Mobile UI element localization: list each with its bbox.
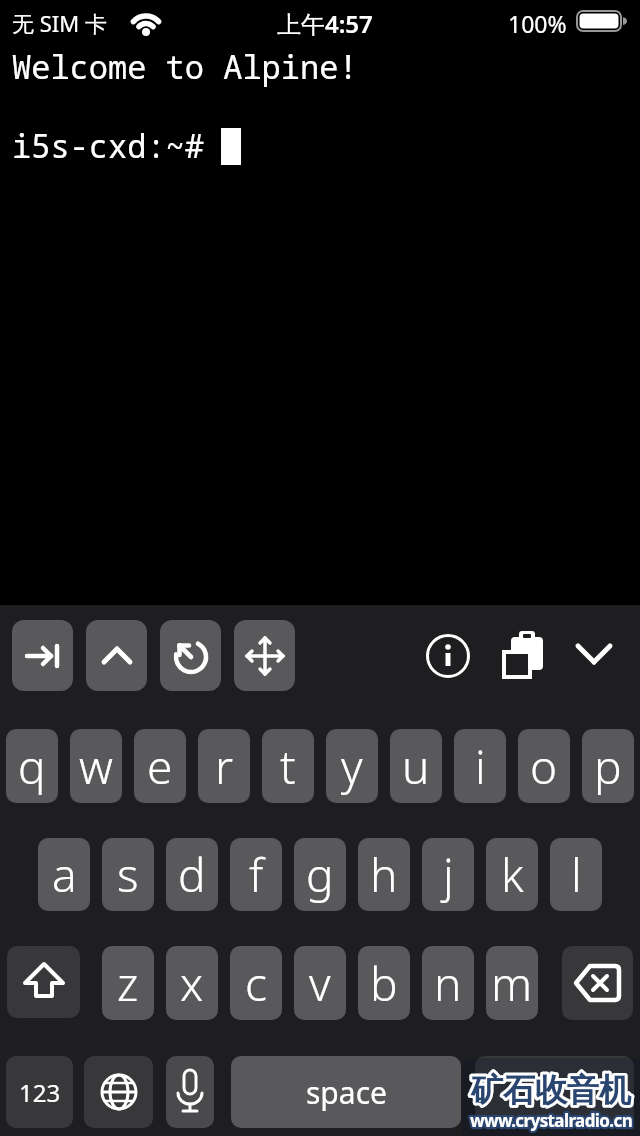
staticText: z: [117, 952, 139, 1015]
button[interactable]: r: [198, 729, 250, 803]
staticText: r: [215, 735, 234, 798]
button[interactable]: t: [262, 729, 314, 803]
button[interactable]: [498, 628, 548, 682]
staticText: 123: [19, 1076, 61, 1109]
staticText: s: [117, 843, 139, 906]
staticText: www.crystalradio.cn: [470, 1109, 633, 1132]
staticText: j: [443, 843, 454, 906]
button[interactable]: [12, 620, 73, 691]
button[interactable]: p: [582, 729, 634, 803]
button[interactable]: s: [102, 838, 154, 911]
staticText: u: [402, 735, 430, 798]
staticText: 矿石收音机: [471, 1070, 631, 1110]
button[interactable]: y: [326, 729, 378, 803]
staticText: t: [280, 735, 296, 798]
staticText: q: [18, 735, 46, 798]
staticText: n: [434, 952, 462, 1015]
button[interactable]: [166, 1056, 214, 1128]
staticText: x: [180, 952, 204, 1015]
staticText: w: [79, 735, 113, 798]
button[interactable]: [86, 620, 147, 691]
button[interactable]: j: [422, 838, 474, 911]
button[interactable]: u: [390, 729, 442, 803]
button[interactable]: k: [486, 838, 538, 911]
staticText: 矿石收音机: [471, 1070, 631, 1110]
staticText: f: [249, 843, 264, 906]
button[interactable]: [84, 1056, 153, 1128]
staticText: c: [245, 952, 267, 1015]
staticText: b: [370, 952, 398, 1015]
button[interactable]: h: [358, 838, 410, 911]
staticText: Welcome to Alpine!: [12, 45, 358, 89]
staticText: i5s-cxd:~#: [12, 124, 205, 168]
button[interactable]: v: [294, 946, 346, 1020]
staticText: 100%: [508, 8, 567, 39]
button[interactable]: x: [166, 946, 218, 1020]
button[interactable]: [160, 620, 221, 691]
button[interactable]: [562, 946, 633, 1020]
staticText: v: [309, 952, 331, 1015]
staticText: www.crystalradio.cn: [470, 1109, 633, 1132]
staticText: o: [530, 735, 558, 798]
staticText: p: [594, 735, 622, 798]
staticText: g: [306, 843, 334, 906]
button[interactable]: o: [518, 729, 570, 803]
button[interactable]: 123: [6, 1056, 73, 1128]
button[interactable]: [572, 636, 616, 672]
staticText: m: [491, 952, 533, 1015]
button[interactable]: w: [70, 729, 122, 803]
staticText: d: [178, 843, 206, 906]
staticText: y: [341, 735, 363, 798]
staticText: l: [571, 843, 582, 906]
button[interactable]: [7, 946, 80, 1018]
button[interactable]: space: [231, 1056, 461, 1128]
staticText: h: [370, 843, 398, 906]
button[interactable]: i: [454, 729, 506, 803]
button[interactable]: [426, 634, 470, 678]
button[interactable]: m: [486, 946, 538, 1020]
staticText: i: [475, 735, 486, 798]
button[interactable]: c: [230, 946, 282, 1020]
button[interactable]: b: [358, 946, 410, 1020]
staticText: space: [306, 1072, 387, 1113]
button[interactable]: e: [134, 729, 186, 803]
button[interactable]: l: [550, 838, 602, 911]
staticText: a: [52, 843, 77, 906]
staticText: e: [147, 735, 173, 798]
button[interactable]: g: [294, 838, 346, 911]
button[interactable]: f: [230, 838, 282, 911]
button[interactable]: n: [422, 946, 474, 1020]
button[interactable]: [234, 620, 295, 691]
button[interactable]: d: [166, 838, 218, 911]
staticText: 上午4:57: [277, 7, 373, 40]
button[interactable]: [475, 1056, 634, 1128]
button[interactable]: q: [6, 729, 58, 803]
staticText: 无 SIM 卡: [12, 8, 107, 38]
button[interactable]: z: [102, 946, 154, 1020]
button[interactable]: a: [38, 838, 90, 911]
staticText: k: [501, 843, 524, 906]
